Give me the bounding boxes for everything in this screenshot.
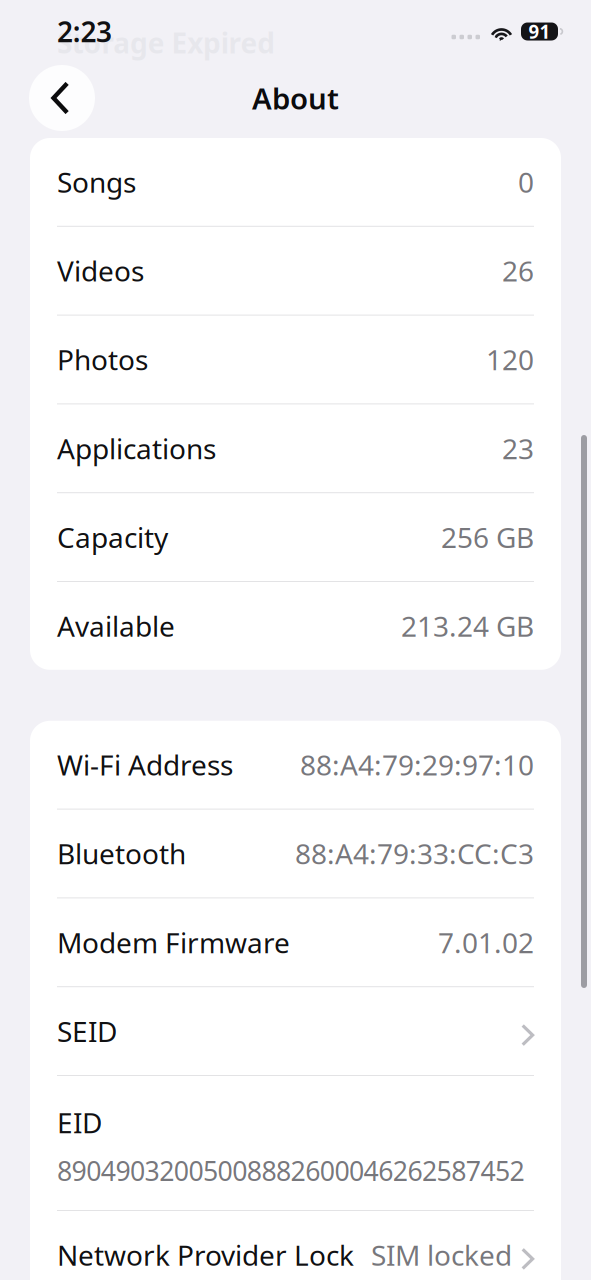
staticText: 89049032005008882600046262587452 — [57, 1153, 525, 1188]
staticText: EID — [57, 1104, 102, 1141]
staticText: 7.01.02 — [438, 924, 534, 961]
staticText: Storage Expired — [57, 24, 275, 61]
staticText: 120 — [486, 341, 534, 378]
staticText: Applications — [57, 430, 216, 467]
staticText: Wi-Fi Address — [57, 746, 233, 783]
button[interactable]: SEID — [30, 987, 561, 1075]
staticText: 88:A4:79:29:97:10 — [300, 746, 534, 783]
staticText: 23 — [502, 430, 534, 467]
staticText: Available — [57, 607, 175, 644]
staticText: Videos — [57, 252, 144, 289]
staticText: Bluetooth — [57, 835, 186, 872]
staticText: 26 — [502, 252, 534, 289]
button[interactable]: Bluetooth — [30, 810, 561, 897]
staticText: 0 — [518, 163, 534, 200]
button[interactable]: Photos — [30, 316, 561, 403]
button[interactable]: Videos — [30, 227, 561, 315]
staticText: 88:A4:79:33:CC:C3 — [295, 835, 534, 872]
staticText: About — [252, 78, 339, 117]
staticText: Photos — [57, 341, 148, 378]
staticText: Network Provider Lock — [57, 1236, 354, 1273]
staticText: Modem Firmware — [57, 924, 290, 961]
button[interactable]: Songs — [30, 138, 561, 226]
button[interactable]: EID — [30, 1076, 561, 1210]
staticText: 91 — [528, 19, 550, 44]
staticText: Capacity — [57, 518, 168, 556]
staticText: 2:23 — [57, 13, 112, 50]
staticText: SIM locked — [371, 1236, 512, 1273]
button[interactable]: Network Provider Lock — [30, 1211, 561, 1280]
button[interactable]: Wi-Fi Address — [30, 721, 561, 809]
staticText: Songs — [57, 163, 136, 200]
button[interactable]: Modem Firmware — [30, 898, 561, 986]
button[interactable]: Applications — [30, 404, 561, 492]
staticText: 256 GB — [441, 518, 534, 556]
staticText: 213.24 GB — [401, 607, 534, 644]
button[interactable]: Capacity — [30, 493, 561, 581]
button[interactable]: Back — [29, 65, 95, 131]
staticText: SEID — [57, 1012, 117, 1050]
button[interactable]: Available — [30, 582, 561, 670]
